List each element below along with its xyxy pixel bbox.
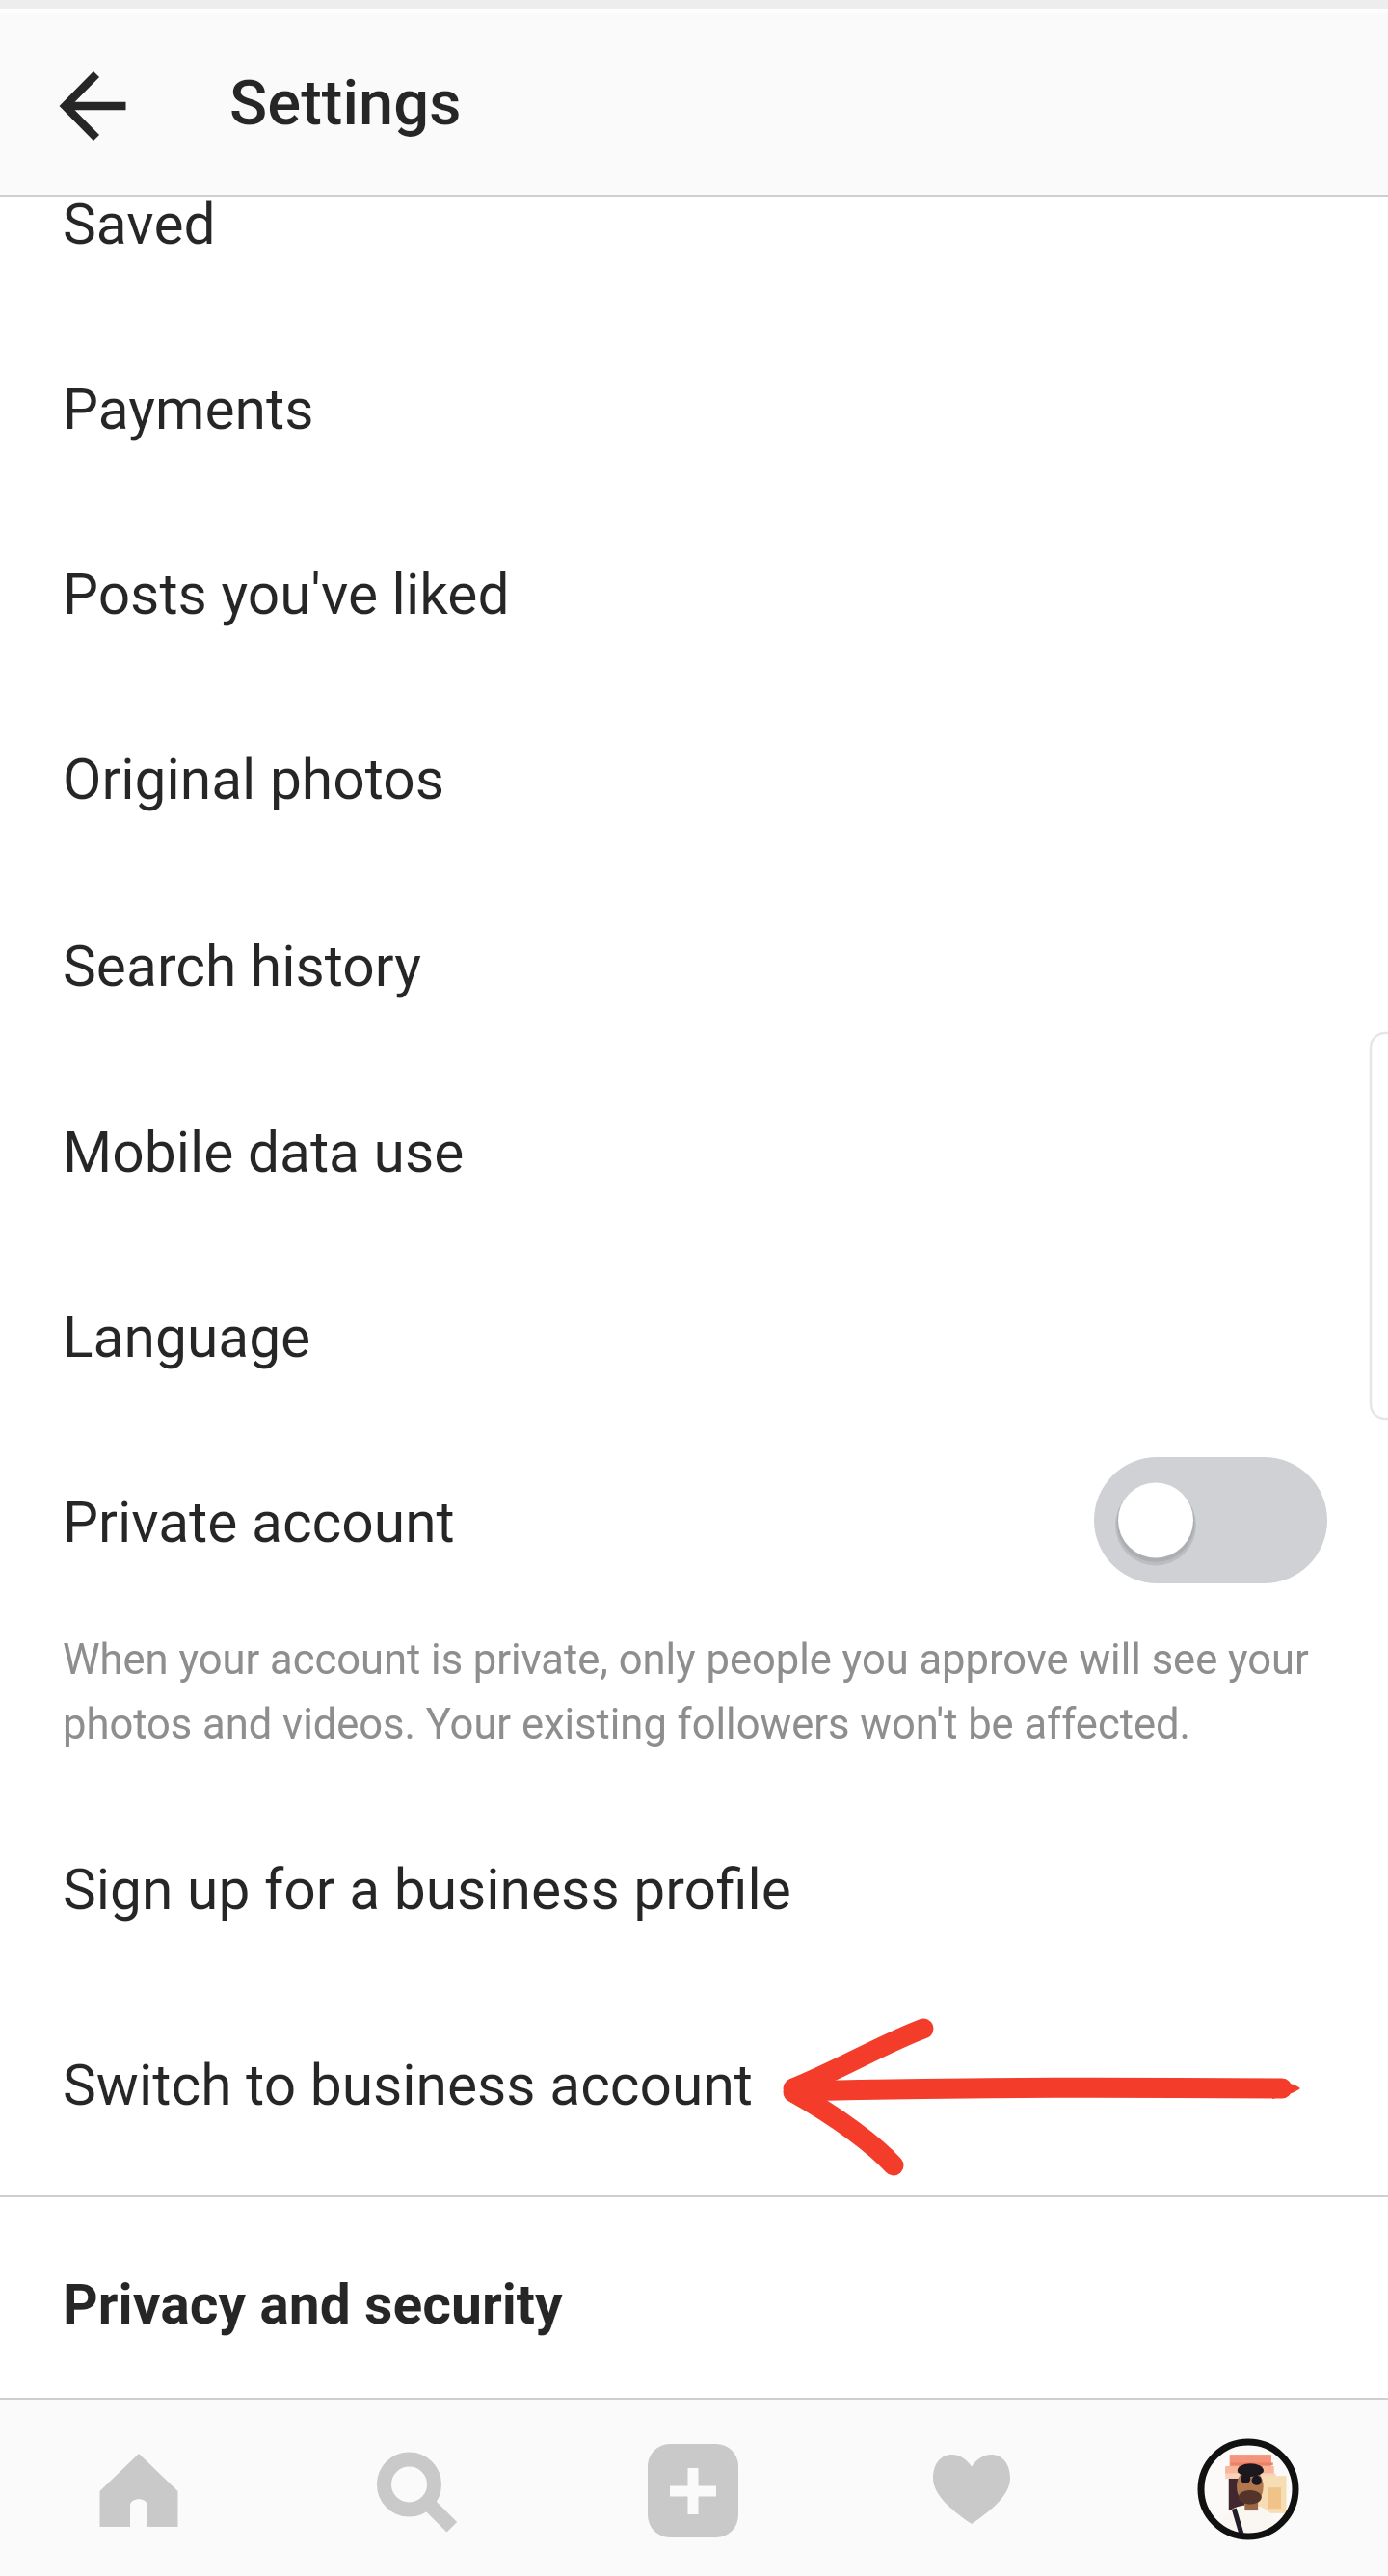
staticText: Language [63,1305,311,1371]
staticText: Search history [63,934,421,1000]
button[interactable]: Private account [0,1430,1388,1615]
button[interactable]: Privacy and security [0,2208,1388,2401]
staticText: Posts you've liked [63,562,510,628]
button[interactable]: Posts you've liked [0,502,1388,687]
button[interactable]: Language [0,1245,1388,1430]
button[interactable]: Original photos [0,687,1388,872]
button[interactable]: Sign up for a business profile [0,1797,1388,1982]
staticText: Private account [63,1490,455,1556]
button[interactable]: Activity [833,2400,1110,2576]
button[interactable]: Payments [0,317,1388,502]
staticText: Saved [63,192,216,258]
button[interactable]: Profile [1110,2400,1388,2576]
button[interactable]: Search [278,2400,555,2576]
button[interactable]: Home [0,2400,278,2576]
button[interactable]: Private account toggle [1094,1457,1327,1583]
button[interactable]: Mobile data use [0,1060,1388,1245]
staticText: Payments [63,377,314,443]
staticText: Original photos [63,747,445,813]
staticText: Privacy and security [63,2272,563,2337]
staticText: When your account is private, only peopl… [63,1635,1316,1749]
staticText: Switch to business account [63,2053,753,2119]
button[interactable]: Back [38,48,151,162]
button[interactable]: Switch to business account [0,1993,1388,2178]
button[interactable]: Settings [229,13,462,194]
button[interactable]: Search history [0,874,1388,1059]
staticText: Mobile data use [63,1120,465,1186]
staticText: Settings [229,66,462,140]
button[interactable]: New post [555,2400,833,2576]
staticText: Sign up for a business profile [63,1857,791,1924]
button[interactable]: Saved [0,132,1388,317]
